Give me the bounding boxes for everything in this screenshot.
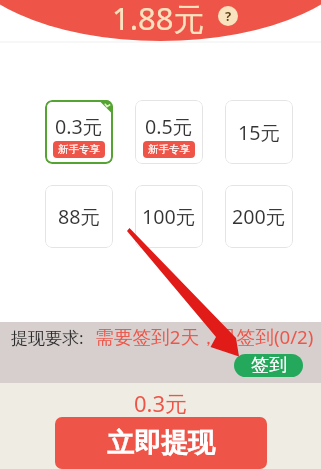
staticText: ? [225,7,232,25]
button[interactable]: Help [218,6,238,26]
button[interactable]: 88元 [45,185,113,248]
staticText: 立即提现 [107,426,215,460]
staticText: 1.88元 [112,0,205,39]
staticText: 100元 [142,203,196,230]
staticText: 200元 [232,203,286,230]
button[interactable]: 签到 [234,354,303,377]
staticText: 0.3元 [55,113,103,140]
button[interactable]: 0.3元 [45,100,113,164]
staticText: 88元 [58,203,101,230]
button[interactable]: 15元 [225,100,293,164]
staticText: 0.5元 [145,113,193,140]
staticText: 提现要求: [11,326,84,349]
staticText: 15元 [238,119,281,146]
staticText: 新手专享 [58,143,100,156]
staticText: 签到 [251,354,287,377]
staticText: 需要签到2天，已签到(0/2) [95,324,314,350]
button[interactable]: 200元 [225,185,293,248]
button[interactable]: 0.5元 [135,100,203,164]
staticText: 新手专享 [148,143,190,156]
button[interactable]: 100元 [135,185,203,248]
staticText: 0.3元 [0,388,321,418]
button[interactable]: 立即提现 [55,417,267,469]
